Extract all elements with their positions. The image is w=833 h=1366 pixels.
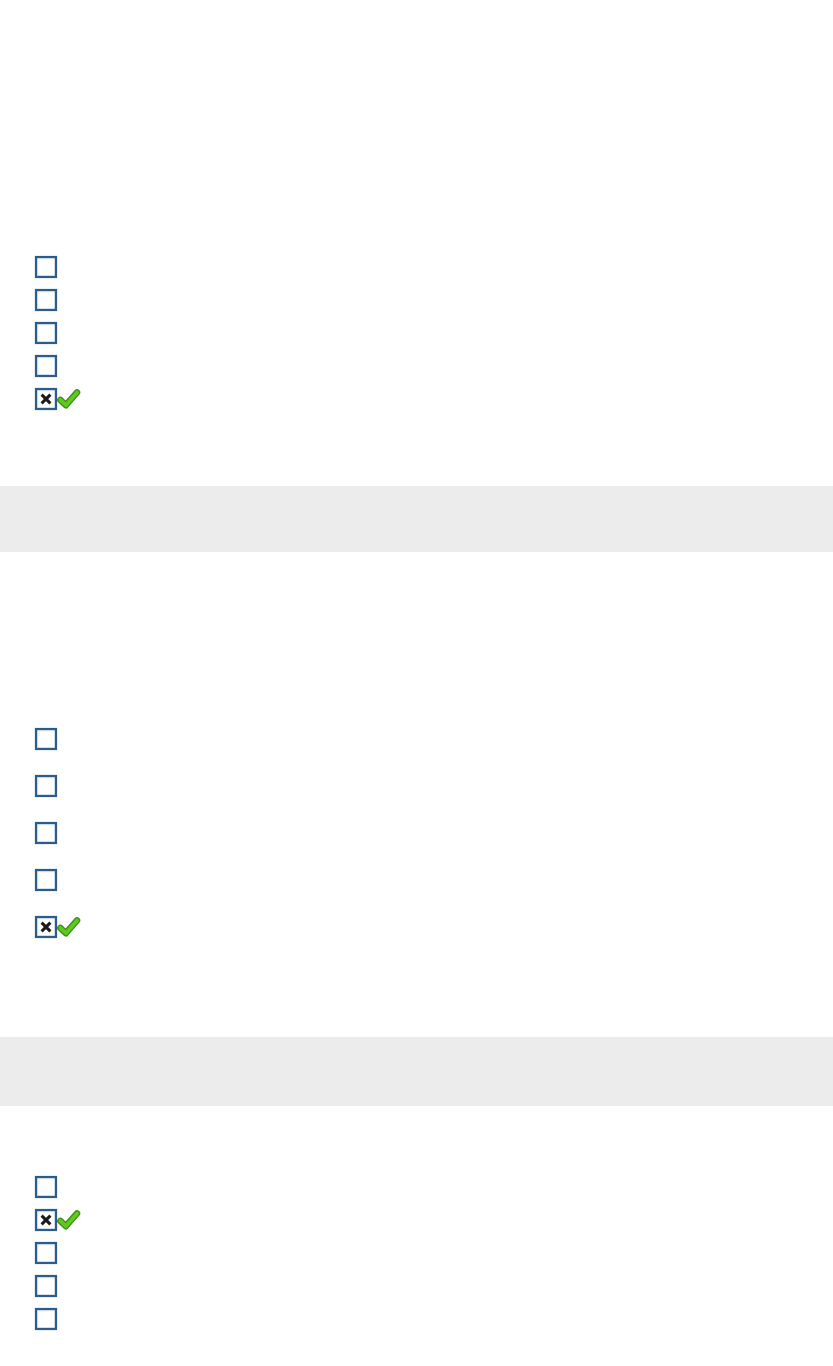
button[interactable]: Question 2 option 5 (0, 916, 833, 963)
button[interactable]: Question 3 option 3 (0, 1242, 833, 1275)
button[interactable]: Question 3 option 1 (0, 1176, 833, 1209)
button[interactable]: Question 2 option 3 (0, 822, 833, 869)
button[interactable]: Question 1 option 4 (0, 355, 833, 388)
button[interactable]: Question 1 option 3 (0, 322, 833, 355)
button[interactable]: Question 2 option 1 (0, 728, 833, 775)
button[interactable]: Question 3 option 5 (0, 1308, 833, 1341)
button[interactable]: Question 2 option 4 (0, 869, 833, 916)
button[interactable]: Question 3 option 2 (0, 1209, 833, 1242)
button[interactable]: Question 1 option 5 (0, 388, 833, 421)
button[interactable]: Question 1 option 2 (0, 289, 833, 322)
button[interactable]: Question 3 option 4 (0, 1275, 833, 1308)
button[interactable]: Question 1 option 1 (0, 256, 833, 289)
button[interactable]: Question 2 option 2 (0, 775, 833, 822)
